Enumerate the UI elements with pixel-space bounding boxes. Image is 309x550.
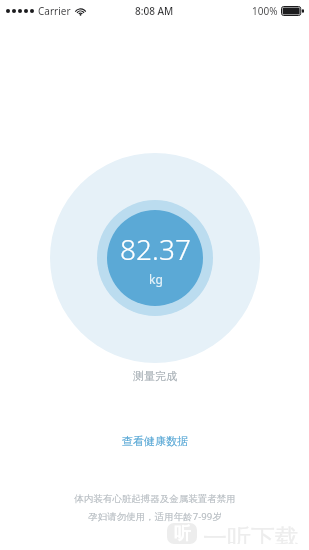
staticText: 体内装有心脏起搏器及金属装置者禁用	[74, 493, 236, 505]
button[interactable]: 查看健康数据	[114, 431, 196, 451]
staticText: 8:08 AM	[135, 4, 174, 18]
staticText: 听	[174, 523, 191, 544]
staticText: 孕妇请勿使用，适用年龄7-99岁	[88, 510, 222, 523]
staticText: Carrier	[38, 4, 71, 18]
button[interactable]: Weight reading 82.37 kg	[50, 153, 260, 363]
staticText: 查看健康数据	[122, 434, 188, 448]
staticText: 100%	[252, 4, 278, 18]
staticText: kg	[149, 271, 163, 287]
staticText: 一听下载	[203, 523, 299, 544]
staticText: 测量完成	[133, 369, 177, 383]
staticText: 82.37	[120, 230, 191, 268]
